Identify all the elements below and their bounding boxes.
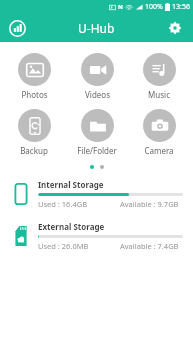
staticText: U-Hub xyxy=(78,20,115,36)
staticText: Camera xyxy=(144,145,174,156)
button[interactable]: Internal Storage xyxy=(0,179,193,209)
button[interactable]: Music xyxy=(130,52,188,101)
staticText: Available : 7.4GB xyxy=(120,241,179,251)
staticText: Music xyxy=(148,89,170,100)
staticText: N xyxy=(118,3,123,11)
staticText: Used : 16.4GB xyxy=(38,199,88,209)
staticText: Videos xyxy=(85,89,110,100)
staticText: File/Folder xyxy=(77,145,117,156)
button[interactable]: File/Folder xyxy=(68,108,126,157)
staticText: Backup xyxy=(20,145,48,156)
button[interactable]: Camera xyxy=(130,108,188,157)
staticText: External Storage xyxy=(38,221,105,232)
button[interactable]: Backup xyxy=(5,108,63,157)
button[interactable]: External Storage xyxy=(0,221,193,251)
button[interactable]: Storage analysis xyxy=(5,16,29,40)
button[interactable]: Settings xyxy=(163,16,187,40)
staticText: Internal Storage xyxy=(38,179,104,190)
staticText: 100% xyxy=(145,2,163,12)
staticText: 13:56 xyxy=(172,2,190,12)
staticText: Available : 9.7GB xyxy=(120,199,179,209)
button[interactable]: Videos xyxy=(68,52,126,101)
staticText: Photos xyxy=(21,89,48,100)
button[interactable]: Photos xyxy=(5,52,63,101)
staticText: Used : 26.0MB xyxy=(38,241,89,251)
